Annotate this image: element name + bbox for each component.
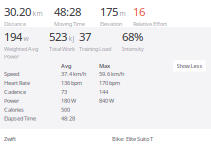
staticText: Elapsed Time [4, 115, 36, 122]
staticText: 180 W [61, 97, 76, 104]
staticText: Training Load [79, 45, 111, 52]
staticText: Total Work [49, 45, 75, 52]
staticText: 30.20 [4, 4, 31, 19]
staticText: 500 [61, 106, 70, 113]
staticText: Moving Time [54, 20, 85, 27]
staticText: km [32, 9, 42, 18]
staticText: Relative Effort [133, 20, 167, 27]
staticText: Elevation [100, 20, 122, 27]
staticText: 16 [133, 4, 145, 19]
button[interactable]: Show Less [173, 60, 206, 72]
staticText: kJ [68, 34, 74, 43]
staticText: Zwift [4, 135, 16, 143]
staticText: Cadence [4, 88, 26, 95]
staticText: Calories [4, 106, 24, 113]
staticText: Avg [61, 62, 72, 70]
staticText: 523 [49, 29, 67, 44]
staticText: 48:28 [61, 115, 75, 122]
staticText: Distance [4, 20, 26, 27]
staticText: 48:28 [54, 4, 81, 19]
staticText: 144 [99, 88, 108, 95]
staticText: 73 [61, 88, 67, 95]
staticText: Bike: Elite Suito T [112, 135, 153, 143]
staticText: 59.6 km/h [99, 70, 124, 78]
staticText: 840 W [99, 97, 114, 104]
staticText: Show Less [176, 62, 202, 70]
staticText: 37 [79, 29, 91, 44]
staticText: Heart Rate [4, 79, 30, 87]
staticText: Weighted Avg Power [4, 45, 38, 60]
staticText: m [119, 9, 125, 18]
staticText: Intensity [122, 45, 144, 52]
staticText: w [23, 34, 28, 43]
staticText: 194 [4, 29, 22, 44]
staticText: 170 bpm [99, 79, 120, 87]
staticText: Speed [4, 70, 19, 78]
staticText: 136 bpm [61, 79, 82, 87]
staticText: Power [4, 97, 19, 104]
staticText: 175 [100, 4, 118, 19]
staticText: 68% [122, 29, 143, 44]
staticText: Max [99, 62, 110, 70]
staticText: 37.4 km/h [61, 70, 86, 78]
